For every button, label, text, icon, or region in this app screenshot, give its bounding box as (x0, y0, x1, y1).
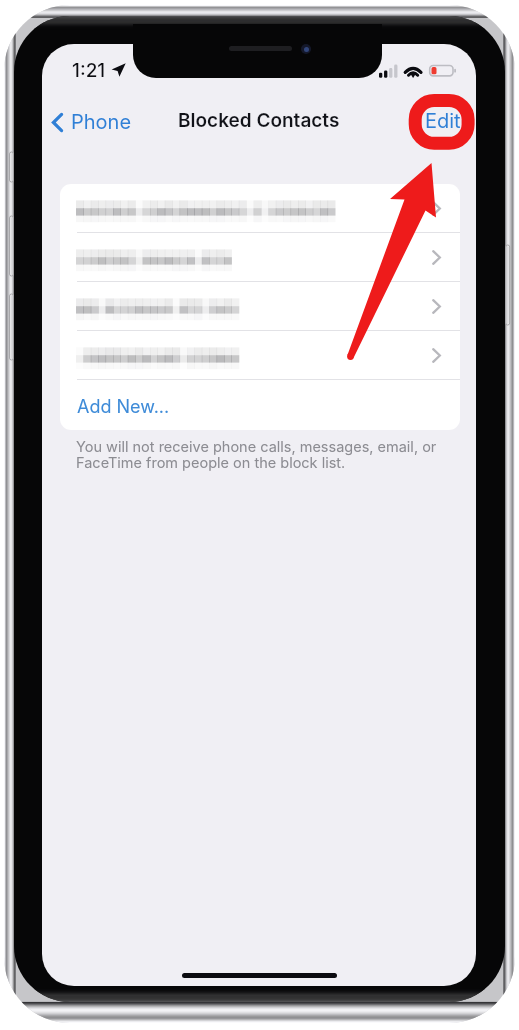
button[interactable]: Blocked contact (60, 331, 460, 379)
button[interactable]: Blocked contact (60, 233, 460, 281)
button[interactable]: Edit (417, 101, 469, 141)
staticText: Phone (71, 110, 132, 134)
button[interactable]: Add New... (60, 380, 460, 430)
staticText: Edit (425, 109, 461, 133)
button[interactable]: Phone (46, 102, 142, 142)
button[interactable]: Blocked contact (60, 282, 460, 330)
button[interactable]: Blocked contact (60, 184, 460, 232)
staticText: Add New... (77, 396, 170, 418)
staticText: You will not receive phone calls, messag… (76, 438, 454, 472)
staticText: Blocked Contacts (178, 109, 340, 132)
staticText: 1:21 (72, 59, 106, 82)
